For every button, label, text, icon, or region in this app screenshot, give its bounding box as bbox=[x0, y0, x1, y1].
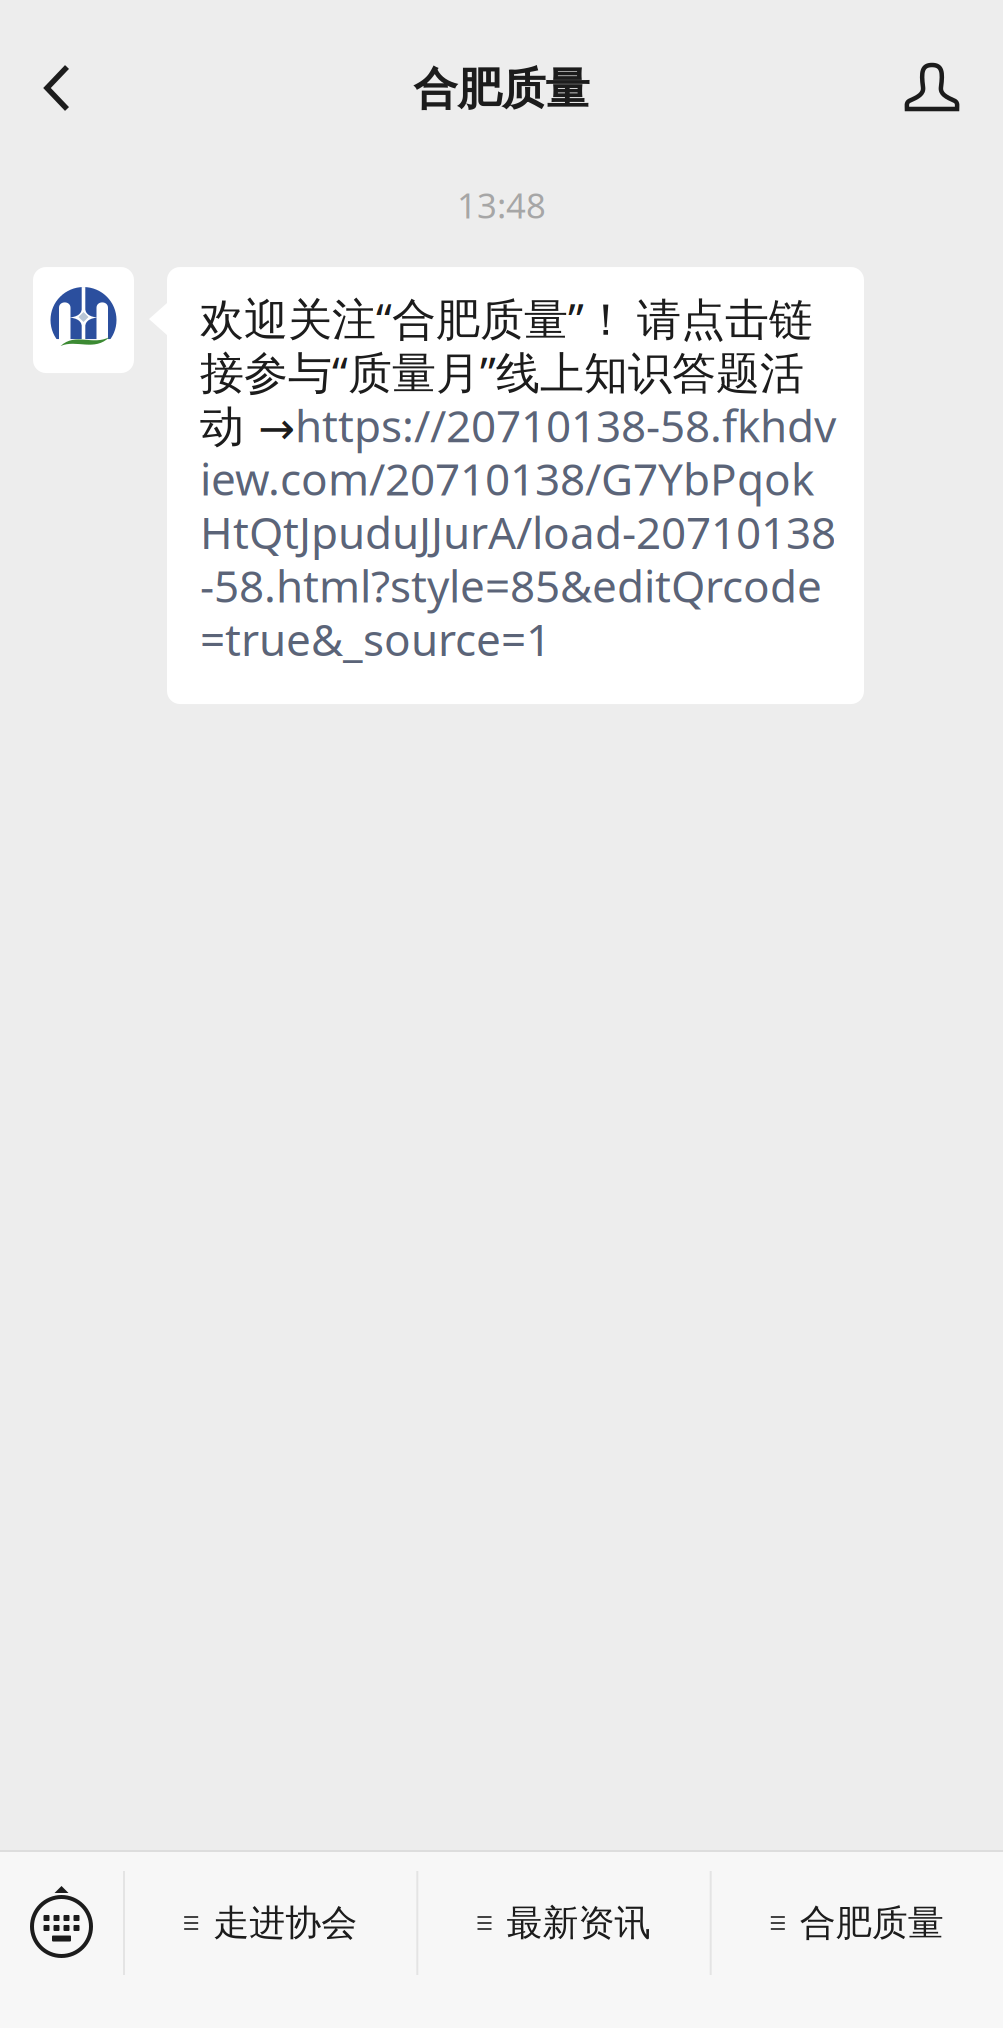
button[interactable]: Back bbox=[0, 0, 110, 176]
staticText: 13:48 bbox=[457, 182, 546, 228]
staticText: 最新资讯 bbox=[506, 1901, 650, 1945]
staticText: 合肥质量 bbox=[800, 1901, 944, 1945]
staticText: 欢迎关注“合肥质量”！ 请点击链接参与“质量月”线上知识答题活动 →h​t​t​… bbox=[200, 289, 836, 668]
staticText: 合肥质量 bbox=[413, 62, 589, 116]
button[interactable]: Keyboard bbox=[0, 1852, 123, 1994]
button[interactable]: 走进协会 bbox=[125, 1852, 416, 1994]
button[interactable]: 最新资讯 bbox=[418, 1852, 710, 1994]
staticText: 走进协会 bbox=[213, 1901, 357, 1945]
button[interactable]: Contact info bbox=[893, 0, 1003, 176]
button[interactable]: 合肥质量 bbox=[712, 1852, 1003, 1994]
